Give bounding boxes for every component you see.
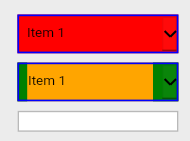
button[interactable]: Item 1 drop-down bbox=[17, 63, 178, 102]
button[interactable]: Empty drop-down bbox=[17, 111, 178, 132]
staticText: Item 1 bbox=[27, 24, 66, 40]
button[interactable]: Item 1 drop-down bbox=[17, 15, 178, 54]
staticText: Item 1 bbox=[28, 72, 67, 88]
